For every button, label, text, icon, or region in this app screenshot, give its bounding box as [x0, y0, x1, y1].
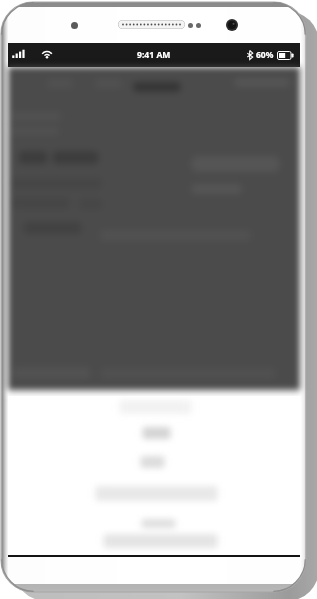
- staticText: 60%: [256, 49, 274, 61]
- staticText: 9:41 AM: [137, 49, 171, 61]
